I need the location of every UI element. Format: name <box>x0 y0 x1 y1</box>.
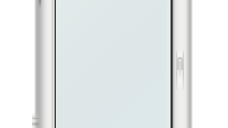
button[interactable]: Window photo <box>0 0 228 128</box>
